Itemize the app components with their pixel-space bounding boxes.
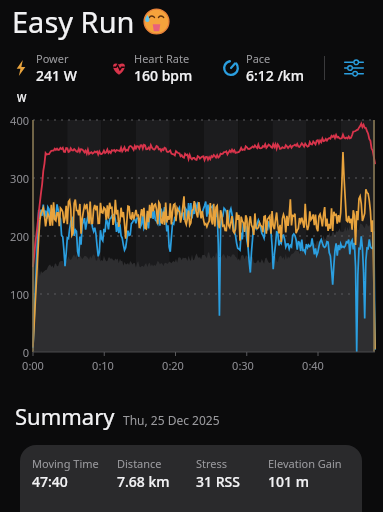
staticText: Moving Time <box>32 456 99 471</box>
staticText: 101 m <box>268 472 309 491</box>
staticText: Easy Run <box>12 2 135 41</box>
staticText: Heart Rate <box>134 51 190 66</box>
staticText: Elevation Gain <box>268 456 342 471</box>
staticText: 300 <box>0 171 29 186</box>
other: Pace <box>222 59 240 77</box>
staticText: Thu, 25 Dec 2025 <box>123 412 220 428</box>
staticText: 0:40 <box>297 358 329 373</box>
button[interactable]: Pace <box>222 51 324 85</box>
staticText: 100 <box>0 287 29 302</box>
staticText: W <box>17 91 27 105</box>
staticText: Pace <box>246 51 271 66</box>
staticText: 400 <box>0 113 29 128</box>
button[interactable]: Stress <box>196 456 268 491</box>
staticText: 241 W <box>36 66 77 85</box>
staticText: 6:12 /km <box>246 66 304 85</box>
staticText: 0:20 <box>157 358 189 373</box>
staticText: 47:40 <box>32 472 68 491</box>
button[interactable]: Elevation Gain <box>268 456 362 491</box>
staticText: Summary <box>15 401 115 431</box>
button[interactable]: Moving Time <box>20 445 362 512</box>
staticText: 160 bpm <box>134 66 193 85</box>
button[interactable]: Moving Time <box>32 456 117 491</box>
staticText: 0 <box>0 345 29 360</box>
staticText: 0:10 <box>87 358 119 373</box>
staticText: 200 <box>0 229 29 244</box>
button[interactable]: Distance <box>117 456 196 491</box>
staticText: 0:30 <box>227 358 259 373</box>
other: Heart Rate <box>110 59 128 77</box>
button[interactable]: Power <box>12 51 110 85</box>
staticText: Stress <box>196 456 228 471</box>
staticText: Power <box>36 51 69 66</box>
button[interactable]: Heart Rate <box>110 51 222 85</box>
button[interactable]: Chart settings <box>339 53 369 83</box>
staticText: 31 RSS <box>196 472 240 491</box>
staticText: Distance <box>117 456 162 471</box>
other: Power <box>12 59 30 77</box>
staticText: 0:00 <box>17 358 49 373</box>
staticText: 7.68 km <box>117 472 170 491</box>
